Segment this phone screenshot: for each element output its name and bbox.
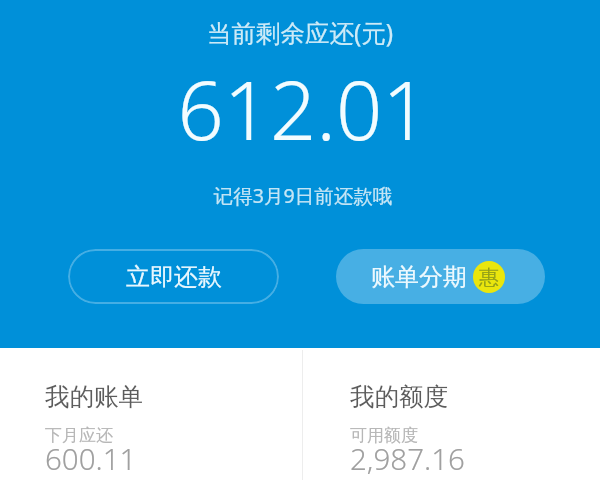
button[interactable]: 账单分期 [336, 249, 545, 304]
staticText: 立即还款 [126, 262, 222, 292]
staticText: 下月应还 [45, 425, 113, 446]
staticText: 可用额度 [350, 425, 418, 446]
staticText: 我的额度 [350, 381, 448, 412]
staticText: 记得3月9日前还款哦 [3, 182, 600, 209]
button[interactable]: 我的额度 [303, 348, 600, 480]
staticText: 600.11 [45, 438, 137, 478]
staticText: 当前剩余应还(元) [0, 16, 600, 49]
staticText: 我的账单 [45, 381, 143, 412]
button[interactable]: 我的账单 [0, 348, 302, 480]
staticText: 账单分期 [371, 262, 467, 292]
button[interactable]: 立即还款 [68, 249, 279, 304]
staticText: 惠 [479, 265, 499, 290]
staticText: 2,987.16 [350, 438, 465, 478]
staticText: 612.01 [3, 53, 600, 163]
